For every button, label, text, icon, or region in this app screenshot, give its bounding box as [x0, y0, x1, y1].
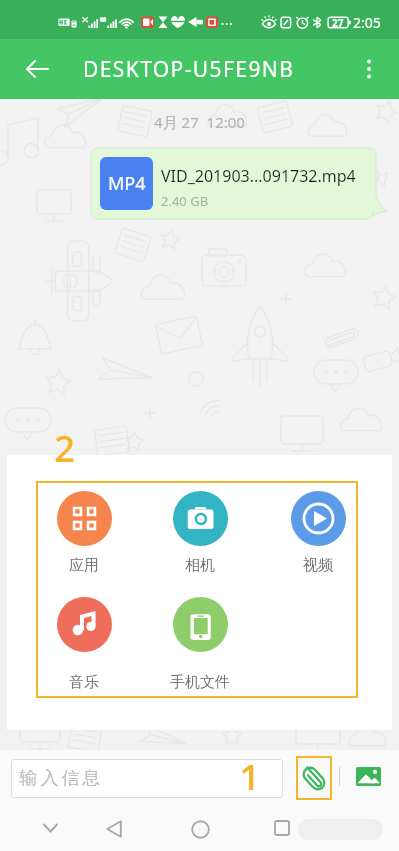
button[interactable]: Home	[182, 811, 218, 847]
button[interactable]: 应用	[40, 485, 128, 578]
staticText: 手机文件	[156, 673, 244, 692]
button[interactable]: Recent apps	[264, 810, 300, 846]
staticText: DESKTOP-U5FE9NB	[83, 55, 295, 84]
staticText: 视频	[274, 556, 362, 575]
staticText: 应用	[40, 556, 128, 575]
button[interactable]: Send image	[352, 760, 384, 792]
button[interactable]: 相机	[156, 485, 244, 578]
button[interactable]: 视频	[274, 485, 362, 578]
staticText: 输入信息	[18, 767, 102, 790]
staticText: VID_201903...091732.mp4	[161, 165, 356, 187]
button[interactable]: 手机文件	[156, 591, 244, 695]
staticText: 相机	[156, 556, 244, 575]
button[interactable]: Back	[14, 46, 60, 92]
button[interactable]: Attach file	[296, 756, 332, 800]
staticText: 1	[239, 751, 261, 790]
button[interactable]: Hide keyboard	[32, 810, 68, 846]
staticText: 4月 27 12:00	[0, 112, 399, 132]
staticText: 2	[54, 422, 76, 472]
staticText: MP4	[108, 171, 146, 196]
staticText: 2.40 GB	[161, 192, 209, 210]
button[interactable]: 输入信息	[11, 759, 283, 798]
staticText: 音乐	[40, 673, 128, 692]
staticText: 27	[332, 16, 344, 30]
staticText: 2:05	[353, 13, 381, 32]
button[interactable]: 音乐	[40, 591, 128, 695]
button[interactable]: More options	[347, 47, 391, 91]
button[interactable]: Back	[96, 811, 132, 847]
